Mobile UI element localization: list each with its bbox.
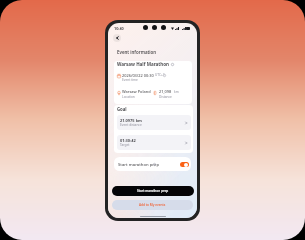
staticText: 21.0975 km — [120, 118, 142, 123]
staticText: km — [174, 90, 179, 94]
staticText: 21,098 — [159, 89, 172, 94]
staticText: Goal — [117, 106, 127, 112]
staticText: Warsaw Half Marathon — [117, 61, 170, 67]
staticText: Distance — [159, 95, 172, 99]
button[interactable]: 21.0975 km — [117, 115, 191, 130]
button[interactable]: Add to My events — [112, 200, 193, 210]
staticText: 01:30:42 — [120, 138, 136, 143]
staticText: Start marathon prep — [137, 189, 169, 193]
staticText: Event distance — [120, 123, 142, 127]
staticText: 2026/03/22 00:30 — [122, 73, 154, 78]
staticText: Location — [122, 95, 135, 99]
staticText: UTC+1 — [155, 73, 165, 77]
staticText: Event time — [122, 78, 138, 82]
staticText: Warsaw Poland — [122, 89, 151, 94]
button[interactable]: 01:30:42 — [117, 135, 191, 150]
staticText: Event information — [117, 49, 157, 55]
button[interactable]: Start marathon prep — [112, 186, 194, 196]
staticText: Add to My events — [139, 203, 166, 207]
staticText: Start marathon prep — [118, 162, 159, 168]
button[interactable]: Back — [113, 34, 121, 42]
staticText: Target — [120, 143, 130, 147]
staticText: 10:40 — [114, 26, 124, 31]
button[interactable]: Start marathon prep — [114, 157, 191, 171]
